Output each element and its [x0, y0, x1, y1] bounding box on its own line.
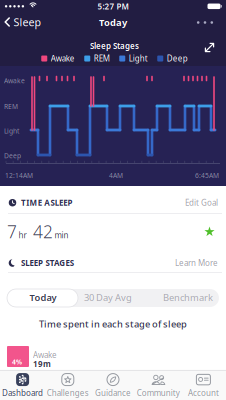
staticText: Sleep Stages	[90, 41, 139, 51]
staticText: 12:14AM	[5, 171, 33, 180]
staticText: Time spent in each stage of sleep	[39, 318, 187, 330]
staticText: min	[54, 230, 68, 240]
staticText: Light	[129, 53, 148, 64]
staticText: 4%	[12, 358, 22, 366]
button[interactable]: Expand chart	[203, 41, 215, 53]
staticText: 5:27 PM	[97, 1, 128, 12]
staticText: Deep	[167, 53, 188, 64]
staticText: SLEEP STAGES	[21, 258, 74, 268]
button[interactable]: Guidance	[90, 371, 135, 399]
staticText: Challenges	[47, 387, 89, 398]
staticText: hr	[18, 230, 26, 240]
staticText: Awake	[4, 76, 25, 85]
button[interactable]: Learn More	[168, 258, 218, 268]
staticText: TIME ASLEEP	[21, 197, 72, 208]
staticText: 42	[28, 220, 53, 243]
staticText: 19m	[33, 359, 51, 369]
staticText: Awake	[33, 350, 57, 360]
button[interactable]: Edit Goal	[168, 197, 218, 208]
staticText: Guidance	[95, 387, 131, 398]
staticText: 6:45AM	[195, 171, 219, 180]
staticText: Today	[99, 16, 127, 28]
staticText: Learn More	[175, 258, 218, 268]
staticText: Light	[4, 127, 19, 135]
staticText: Edit Goal	[185, 197, 218, 208]
button[interactable]	[7, 289, 78, 307]
button[interactable]: 30 Day Avg	[73, 288, 143, 306]
button[interactable]: Challenges	[45, 371, 90, 399]
staticText: Awake	[51, 53, 75, 64]
staticText: REM	[4, 102, 18, 111]
staticText: Dashboard	[2, 387, 43, 398]
button[interactable]: Dashboard	[0, 371, 45, 399]
button[interactable]: Account	[181, 371, 226, 399]
button[interactable]: Benchmark	[153, 288, 223, 306]
button[interactable]: More options	[192, 14, 218, 30]
staticText: Today	[29, 291, 56, 303]
staticText: Deep	[4, 151, 21, 160]
staticText: 7	[7, 220, 17, 243]
staticText: Benchmark	[163, 291, 213, 303]
staticText: Community	[137, 387, 180, 398]
staticText: REM	[94, 53, 110, 64]
staticText: 30 Day Avg	[84, 291, 132, 303]
staticText: Sleep	[13, 15, 41, 29]
button[interactable]: Community	[136, 371, 181, 399]
staticText: 4AM	[109, 171, 123, 180]
button[interactable]: Back to Sleep	[4, 14, 46, 30]
staticText: Account	[188, 387, 219, 398]
